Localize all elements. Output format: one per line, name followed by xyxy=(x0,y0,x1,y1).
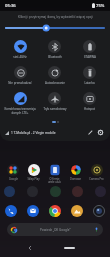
button[interactable]: Tryb samolotowy xyxy=(37,91,72,112)
staticText: Camera Pro xyxy=(89,177,104,181)
staticText: Domowe xyxy=(70,177,81,181)
button[interactable]: Autoobracanie xyxy=(37,65,72,86)
button[interactable]: ETAWNA xyxy=(72,39,107,60)
staticText: Nie przeszkadzać xyxy=(8,81,32,85)
button[interactable]: MESSAGES xyxy=(27,205,39,217)
staticText: 05:36 xyxy=(5,3,16,9)
staticText: Hotspot xyxy=(84,107,95,111)
button[interactable]: Edit tiles xyxy=(86,128,95,137)
button[interactable] xyxy=(72,186,83,197)
staticText: sieć-4GHz xyxy=(13,55,27,59)
button[interactable]: Back xyxy=(24,242,35,253)
button[interactable]: O firmie wiele ulub xyxy=(44,164,65,183)
staticText: Kliknij i przytrzymaj ikonę, by wyświetl… xyxy=(18,15,93,19)
staticText: ETAWNA xyxy=(84,55,96,59)
staticText: Tryb samolotowy xyxy=(43,107,67,111)
button[interactable]: CAMERA xyxy=(93,205,105,217)
button[interactable]: Home xyxy=(61,242,77,253)
staticText: Sklep Play xyxy=(27,177,40,181)
button[interactable]: Camera Pro xyxy=(86,164,107,181)
button[interactable]: Latarka xyxy=(72,65,107,86)
staticText: Latarka xyxy=(84,81,95,85)
button[interactable]: Bluetooth xyxy=(37,39,72,60)
button[interactable]: PHONE xyxy=(5,205,17,217)
button[interactable] xyxy=(4,186,15,197)
button[interactable]: Powiedz „OK Google” xyxy=(7,223,103,236)
staticText: 75% xyxy=(96,3,105,9)
button[interactable] xyxy=(50,186,61,197)
button[interactable]: PHOTOS2 xyxy=(71,205,83,217)
button[interactable] xyxy=(27,186,38,197)
staticText: Google xyxy=(9,177,18,181)
staticText: 1 T-Mobile.pl - 2 Virgin mobile xyxy=(11,131,56,135)
button[interactable]: Nie przeszkadzać xyxy=(3,65,37,86)
button[interactable]: Domowe xyxy=(65,164,86,181)
button[interactable]: sieć-4GHz xyxy=(3,39,37,60)
button[interactable] xyxy=(6,24,104,32)
staticText: Komórkowa transmisja danych LTE+ xyxy=(4,107,36,115)
button[interactable]: CHROME xyxy=(49,205,61,217)
staticText: Bluetooth xyxy=(48,55,62,59)
button[interactable] xyxy=(95,186,106,197)
staticText: O firmie wiele ulub xyxy=(48,177,61,183)
staticText: Autoobracanie xyxy=(45,81,65,85)
button[interactable]: Komórkowa transmisja danych LTE+ xyxy=(3,91,37,116)
button[interactable]: Sklep Play xyxy=(23,164,44,181)
button[interactable]: Settings xyxy=(96,128,105,137)
button[interactable]: Hotspot xyxy=(72,91,107,112)
button[interactable]: Google xyxy=(3,164,23,181)
staticText: Powiedz „OK Google” xyxy=(40,228,71,232)
